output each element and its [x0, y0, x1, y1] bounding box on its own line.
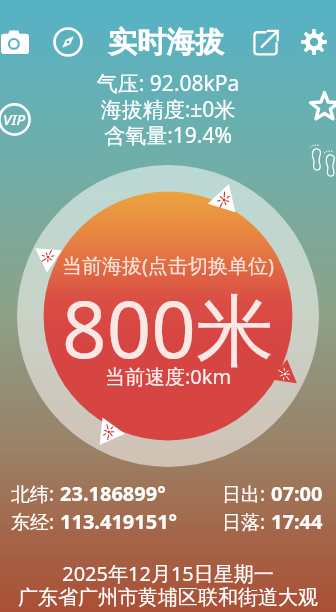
staticText: 2025年12月15日星期一 — [0, 560, 336, 587]
button[interactable] — [17, 165, 319, 467]
button[interactable]: Favorite — [302, 84, 336, 128]
button[interactable]: Settings — [296, 21, 332, 63]
button[interactable]: VIP — [0, 95, 38, 143]
button[interactable]: Compass — [51, 21, 84, 63]
button[interactable]: 北纬: — [11, 480, 166, 507]
button[interactable]: 实时海拔 — [108, 24, 224, 61]
staticText: 当前海拔(点击切换单位) — [0, 252, 336, 279]
button[interactable]: 日出: — [222, 480, 323, 507]
staticText: 日落: — [222, 509, 271, 535]
button[interactable]: Footprints — [306, 140, 336, 174]
staticText: 07:00 — [271, 480, 323, 507]
button[interactable]: 日落: — [222, 508, 323, 535]
button[interactable]: 东经: — [11, 508, 178, 535]
staticText: 海拔精度:±0米 — [0, 95, 336, 124]
staticText: 东经: — [11, 509, 60, 535]
staticText: 17:44 — [271, 508, 323, 535]
button[interactable]: Camera — [0, 21, 32, 63]
staticText: 广东省广州市黄埔区联和街道大观 — [0, 585, 336, 610]
button[interactable]: Share — [248, 21, 283, 63]
staticText: 23.186899° — [60, 480, 166, 507]
staticText: 800米 — [0, 275, 336, 382]
staticText: 北纬: — [11, 481, 60, 507]
staticText: 当前速度:0km — [0, 363, 336, 390]
staticText: 含氧量:19.4% — [0, 121, 336, 150]
staticText: 气压: 92.08kPa — [0, 69, 336, 98]
staticText: VIP — [3, 109, 26, 129]
staticText: 日出: — [222, 481, 271, 507]
staticText: 113.419151° — [60, 508, 178, 535]
